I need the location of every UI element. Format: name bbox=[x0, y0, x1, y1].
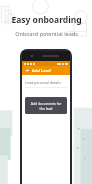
staticText: Add Lead bbox=[32, 68, 51, 74]
staticText: Add documents for the lead bbox=[28, 101, 64, 111]
button[interactable]: Back bbox=[25, 68, 30, 73]
staticText: Onboard potential leads bbox=[15, 30, 78, 37]
staticText: Easy onboarding bbox=[11, 14, 82, 26]
button[interactable]: Add documents for the lead bbox=[25, 97, 67, 114]
staticText: Lead personal details bbox=[25, 80, 61, 85]
